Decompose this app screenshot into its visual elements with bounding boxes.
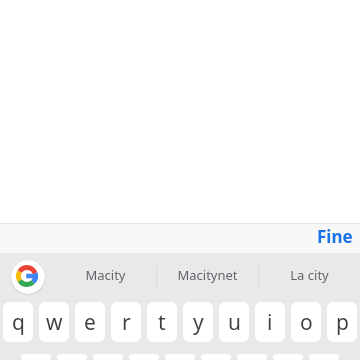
staticText: r <box>122 308 131 337</box>
staticText: e <box>84 308 96 337</box>
button[interactable]: g <box>165 354 195 360</box>
button[interactable]: a <box>21 354 51 360</box>
button[interactable]: t <box>147 302 177 342</box>
staticText: w <box>46 308 63 337</box>
staticText: La city <box>290 266 329 284</box>
button[interactable]: s <box>57 354 87 360</box>
button[interactable]: y <box>183 302 213 342</box>
staticText: i <box>267 308 273 337</box>
button[interactable]: l <box>309 354 339 360</box>
button[interactable]: k <box>273 354 303 360</box>
button[interactable]: La city <box>259 253 360 300</box>
button[interactable]: Macity <box>55 253 156 300</box>
staticText: t <box>158 308 166 337</box>
staticText: p <box>336 308 349 337</box>
staticText: Fine <box>317 225 353 248</box>
button[interactable]: r <box>111 302 141 342</box>
button[interactable]: p <box>327 302 357 342</box>
staticText: o <box>300 308 313 337</box>
button[interactable]: Google Search <box>11 260 45 294</box>
button[interactable]: h <box>201 354 231 360</box>
button[interactable]: Macitynet <box>157 253 258 300</box>
button[interactable]: d <box>93 354 123 360</box>
button[interactable]: e <box>75 302 105 342</box>
staticText: y <box>193 308 204 337</box>
button[interactable]: Fine <box>309 222 360 251</box>
staticText: q <box>12 308 25 337</box>
staticText: Macity <box>85 266 126 284</box>
button[interactable]: f <box>129 354 159 360</box>
button[interactable]: j <box>237 354 267 360</box>
staticText: u <box>228 308 241 337</box>
button[interactable]: i <box>255 302 285 342</box>
button[interactable]: o <box>291 302 321 342</box>
staticText: Macitynet <box>177 266 238 284</box>
button[interactable]: w <box>39 302 69 342</box>
button[interactable]: q <box>3 302 33 342</box>
button[interactable]: u <box>219 302 249 342</box>
